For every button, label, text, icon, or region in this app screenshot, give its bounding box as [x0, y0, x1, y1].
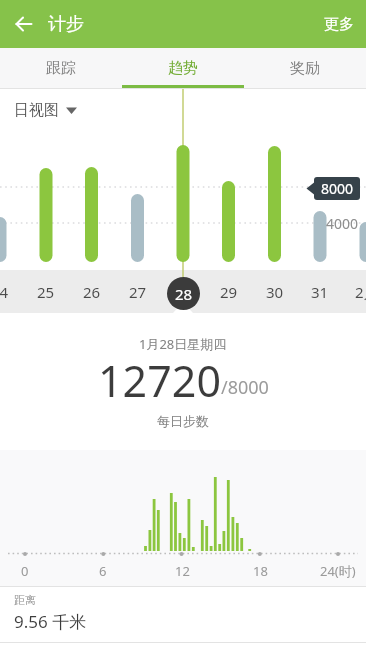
button[interactable]: 跟踪 — [0, 48, 122, 88]
staticText: 12720 — [98, 351, 221, 410]
staticText: 29 — [220, 282, 238, 302]
staticText: 30 — [266, 282, 284, 302]
staticText: 28 — [175, 284, 193, 304]
staticText: 0 — [21, 562, 29, 580]
button[interactable]: 24 — [0, 270, 23, 313]
button[interactable]: 趋势 — [122, 48, 244, 88]
staticText: 27 — [129, 282, 147, 302]
staticText: 4000 — [326, 214, 359, 233]
button[interactable]: 距离 — [0, 587, 366, 633]
button[interactable]: 29 — [206, 270, 252, 313]
staticText: 8000 — [321, 179, 354, 198]
staticText: 9.56 千米 — [14, 610, 87, 633]
staticText: 奖励 — [290, 59, 320, 78]
button[interactable] — [0, 0, 48, 48]
button[interactable]: 25 — [23, 270, 69, 313]
staticText: 每日步数 — [157, 413, 209, 429]
staticText: 12 — [175, 562, 190, 580]
staticText: 趋势 — [168, 59, 198, 78]
staticText: 24(时) — [320, 562, 356, 580]
staticText: 跟踪 — [46, 59, 76, 78]
staticText: 24 — [0, 282, 9, 302]
staticText: 2月 — [355, 282, 366, 302]
button[interactable]: 日视图 — [14, 101, 77, 120]
staticText: 25 — [37, 282, 55, 302]
button[interactable]: 2月 — [344, 270, 366, 313]
staticText: 距离 — [14, 593, 36, 607]
button[interactable]: 31 — [297, 270, 343, 313]
button[interactable]: 更多 — [312, 0, 366, 48]
button[interactable]: 30 — [252, 270, 298, 313]
staticText: 26 — [83, 282, 101, 302]
button[interactable]: 28 — [167, 277, 200, 310]
staticText: /8000 — [221, 375, 269, 400]
staticText: 18 — [253, 562, 268, 580]
staticText: 更多 — [324, 15, 354, 34]
staticText: 31 — [311, 282, 329, 302]
staticText: 6 — [99, 562, 107, 580]
button[interactable]: 26 — [69, 270, 115, 313]
staticText: 计步 — [48, 13, 84, 36]
button[interactable]: 奖励 — [244, 48, 366, 88]
staticText: 1月28日星期四 — [139, 335, 227, 353]
button[interactable]: 27 — [115, 270, 161, 313]
staticText: 日视图 — [14, 101, 59, 120]
